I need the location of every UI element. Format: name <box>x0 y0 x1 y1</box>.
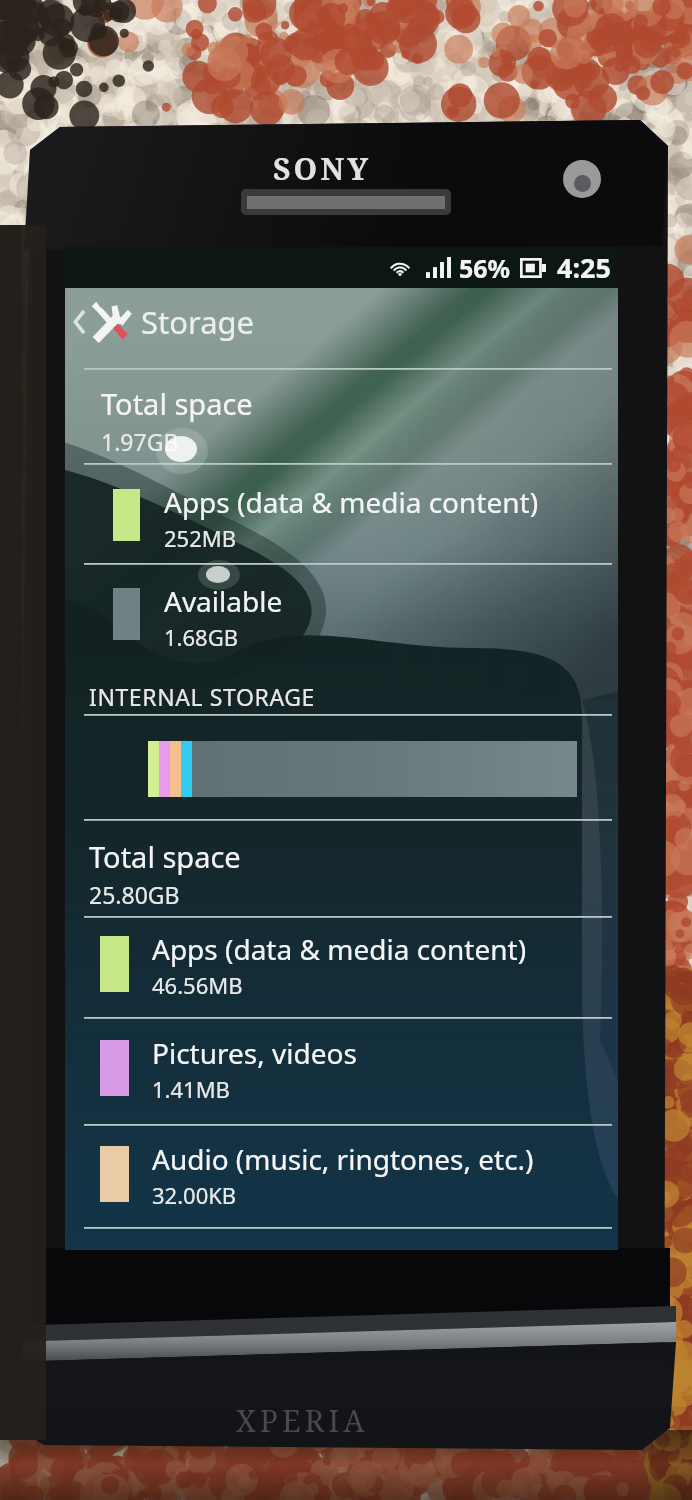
button[interactable]: Navigate up <box>65 291 618 353</box>
button[interactable]: Audio (music, ringtones, etc.) <box>152 1140 618 1210</box>
staticText: 4:25 <box>557 249 611 286</box>
staticText: 1.68GB <box>164 622 238 652</box>
staticText: INTERNAL STORAGE <box>89 681 315 712</box>
staticText: 1.41MB <box>152 1074 230 1104</box>
button[interactable]: Available <box>164 582 618 652</box>
staticText: Apps (data & media content) <box>152 930 527 968</box>
staticText: SONY <box>273 148 372 189</box>
staticText: Pictures, videos <box>152 1034 357 1072</box>
staticText: Apps (data & media content) <box>164 483 539 521</box>
staticText: Available <box>164 582 283 620</box>
button[interactable]: Total space <box>101 384 618 457</box>
staticText: 56% <box>459 251 511 285</box>
staticText: XPERIA <box>236 1400 369 1441</box>
other: Navigate up <box>73 308 86 336</box>
staticText: 46.56MB <box>152 970 243 1000</box>
button[interactable]: Apps (data & media content) <box>152 930 618 1000</box>
button[interactable]: Apps (data & media content) <box>164 483 618 553</box>
staticText: 32.00KB <box>152 1180 237 1210</box>
button[interactable]: Total space <box>89 837 618 910</box>
staticText: 25.80GB <box>89 879 180 910</box>
button[interactable]: Pictures, videos <box>152 1034 618 1104</box>
staticText: Audio (music, ringtones, etc.) <box>152 1140 534 1178</box>
staticText: 1.97GB <box>101 426 179 457</box>
staticText: Total space <box>89 837 241 876</box>
staticText: 252MB <box>164 523 237 553</box>
staticText: Storage <box>141 301 255 343</box>
staticText: Total space <box>101 384 253 423</box>
